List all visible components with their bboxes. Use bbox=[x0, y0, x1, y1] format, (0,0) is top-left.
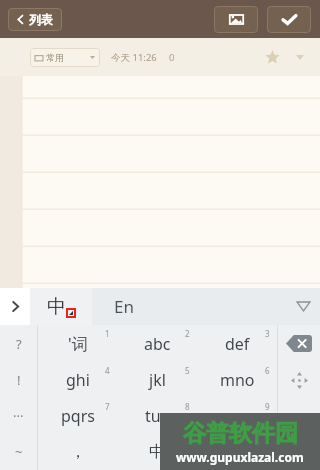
button[interactable]: 中 bbox=[30, 288, 92, 325]
button[interactable]: jkl bbox=[117, 362, 197, 398]
button[interactable]: Key bbox=[278, 398, 320, 434]
button[interactable]: ghi bbox=[38, 362, 117, 398]
button[interactable]: wxyz bbox=[197, 398, 277, 434]
staticText: En bbox=[114, 295, 134, 318]
button[interactable]: 常用 bbox=[30, 48, 100, 67]
button[interactable]: 中 bbox=[117, 434, 197, 470]
staticText: 9 bbox=[265, 401, 270, 412]
staticText: 6 bbox=[265, 365, 270, 376]
staticText: pqrs bbox=[61, 405, 95, 427]
staticText: 8 bbox=[185, 401, 190, 412]
staticText: jkl bbox=[149, 369, 166, 391]
staticText: 2 bbox=[185, 328, 190, 339]
staticText: '词 bbox=[68, 333, 88, 355]
staticText: tuv bbox=[145, 405, 169, 427]
staticText: 列表 bbox=[29, 12, 53, 27]
button[interactable]: '词 bbox=[38, 325, 117, 362]
staticText: ， bbox=[70, 442, 86, 462]
button[interactable]: tuv bbox=[117, 398, 197, 434]
staticText: 0 bbox=[169, 51, 175, 64]
staticText: 7 bbox=[105, 401, 110, 412]
staticText: 谷普软件园 bbox=[183, 419, 298, 448]
button[interactable]: En bbox=[92, 288, 286, 325]
staticText: 4 bbox=[105, 365, 110, 376]
staticText: ! bbox=[17, 371, 21, 389]
button[interactable]: Hide keyboard bbox=[286, 288, 320, 325]
button[interactable]: Cursor keys bbox=[278, 362, 320, 398]
button[interactable]: Backspace bbox=[278, 325, 320, 362]
button[interactable]: More options bbox=[290, 47, 310, 67]
staticText: 中 bbox=[149, 442, 165, 462]
staticText: 0 bbox=[185, 437, 190, 448]
staticText: 中 bbox=[47, 295, 66, 319]
button[interactable]: Save bbox=[267, 6, 311, 33]
staticText: ~ bbox=[15, 443, 23, 461]
staticText: ghi bbox=[66, 369, 90, 391]
button[interactable]: mno bbox=[197, 362, 277, 398]
button[interactable]: Insert image bbox=[214, 6, 258, 33]
staticText: abc bbox=[144, 333, 171, 355]
staticText: mno bbox=[220, 369, 255, 391]
button[interactable]: Favorite bbox=[260, 45, 284, 69]
button[interactable]: 。 bbox=[197, 434, 277, 470]
button[interactable]: def bbox=[197, 325, 277, 362]
button[interactable]: ~ bbox=[0, 434, 37, 470]
staticText: 1 bbox=[105, 328, 110, 339]
staticText: def bbox=[225, 333, 250, 355]
button[interactable]: 列表 bbox=[8, 8, 62, 31]
button[interactable]: Expand toolbar bbox=[0, 288, 30, 325]
staticText: 。 bbox=[229, 442, 245, 462]
button[interactable]: abc bbox=[117, 325, 197, 362]
button[interactable]: Key bbox=[278, 434, 320, 470]
button[interactable]: ··· bbox=[0, 398, 37, 434]
staticText: ? bbox=[16, 335, 22, 353]
staticText: ··· bbox=[13, 407, 24, 425]
staticText: 今天 11:26 bbox=[111, 51, 157, 64]
staticText: 5 bbox=[185, 365, 190, 376]
button[interactable]: ! bbox=[0, 362, 37, 398]
staticText: www.gupuxlazal.com bbox=[176, 449, 304, 465]
button[interactable]: ? bbox=[0, 325, 37, 362]
button[interactable]: ， bbox=[38, 434, 117, 470]
staticText: 3 bbox=[265, 328, 270, 339]
button[interactable]: pqrs bbox=[38, 398, 117, 434]
staticText: 常用 bbox=[46, 52, 64, 63]
staticText: wxyz bbox=[219, 405, 256, 427]
